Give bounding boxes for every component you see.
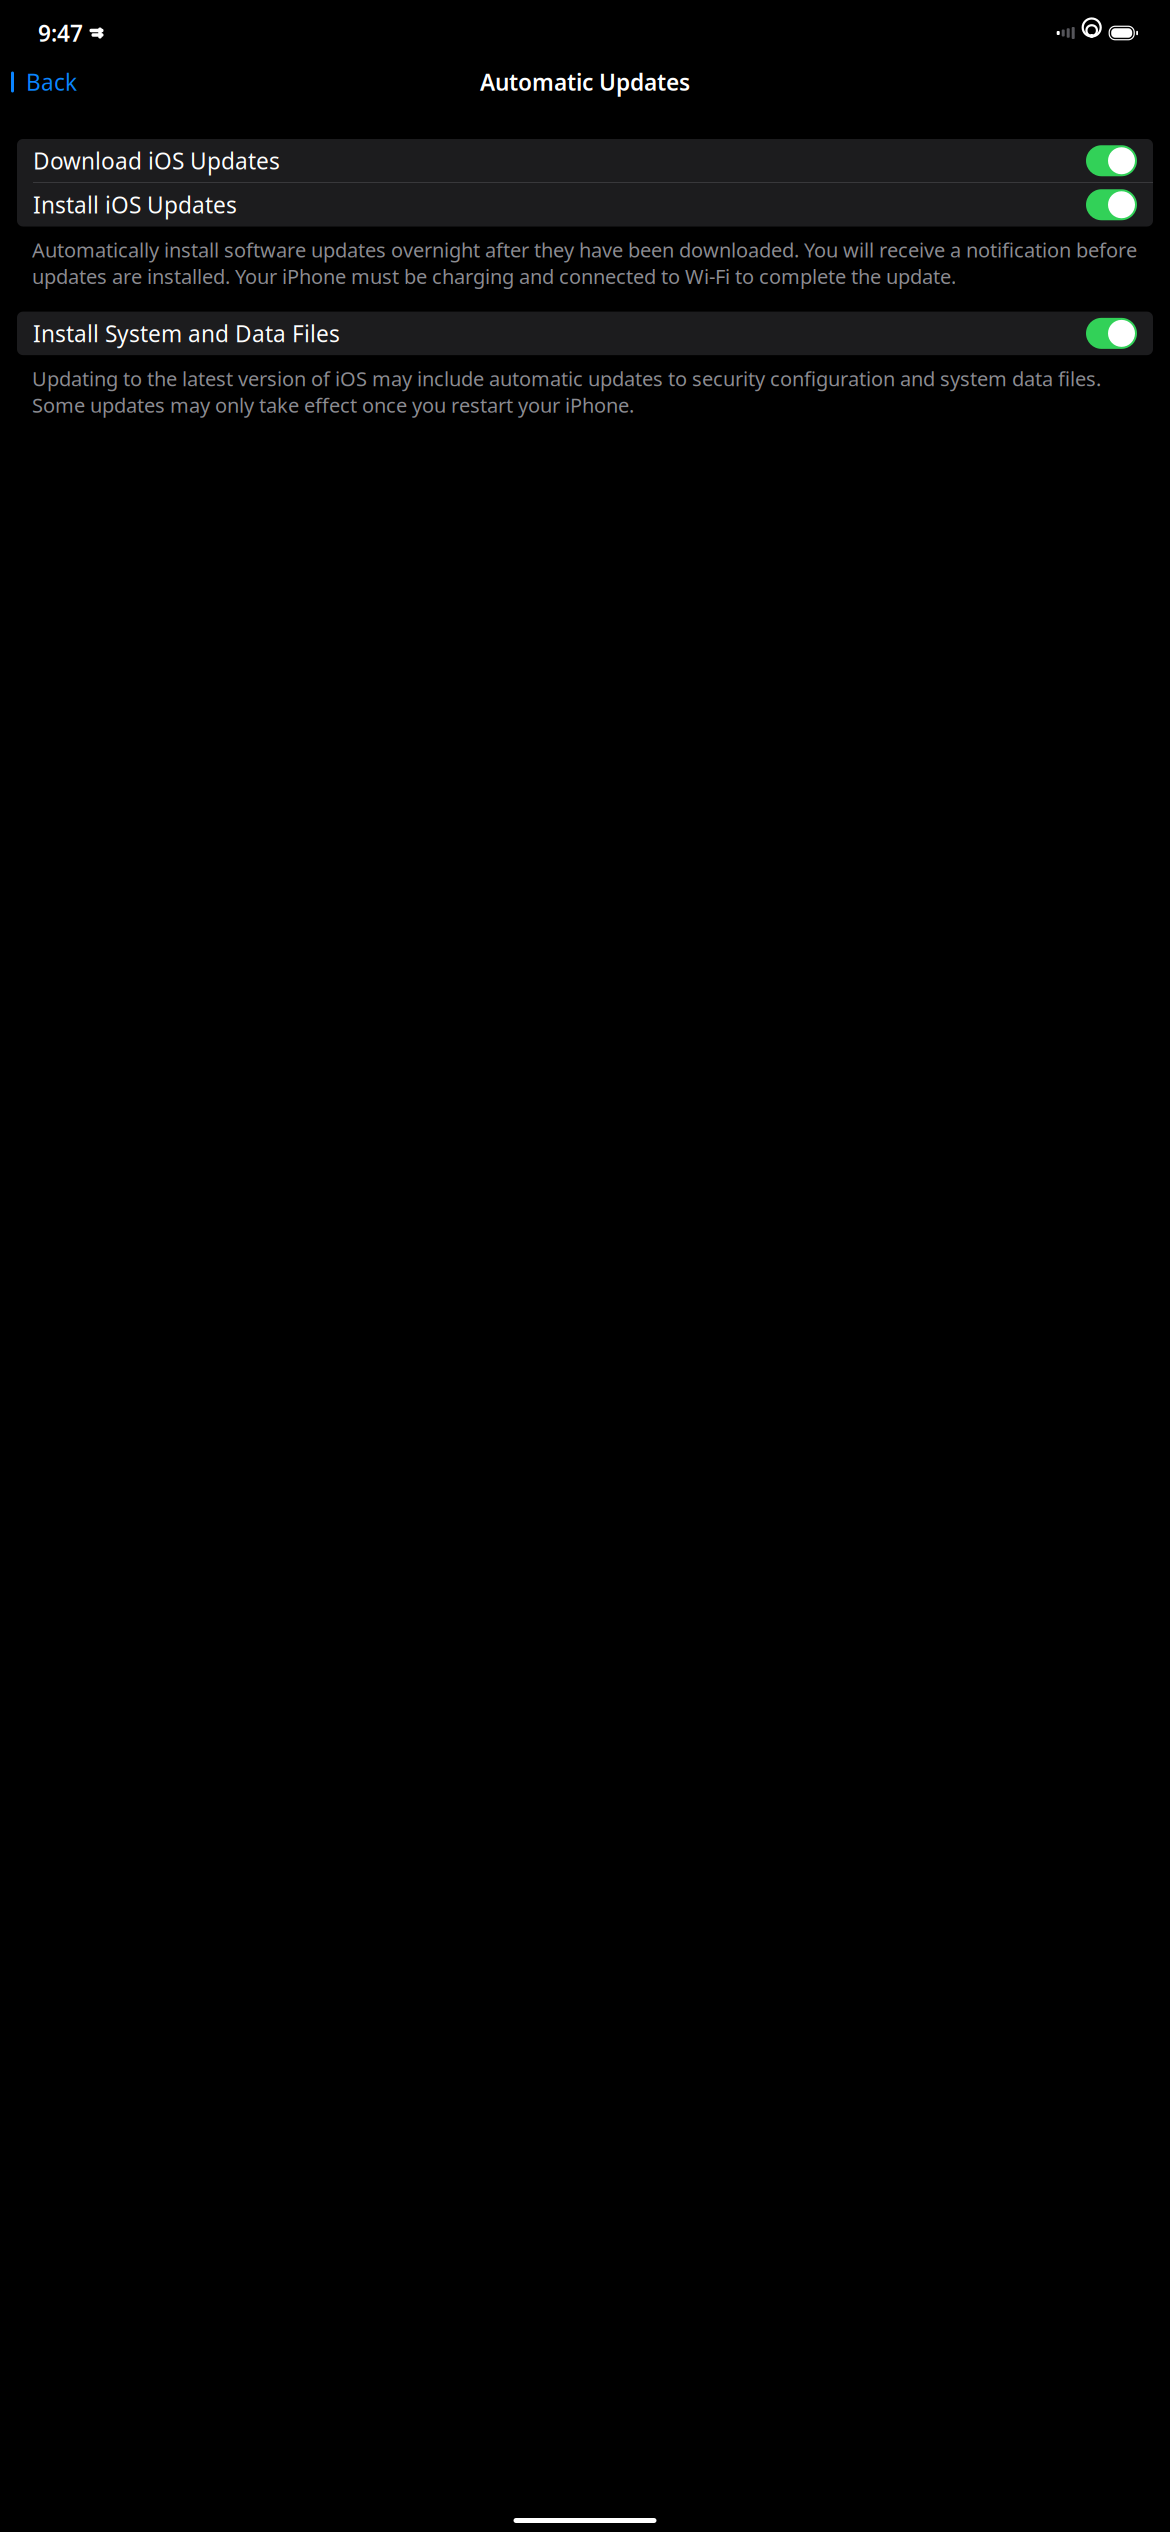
staticText: Automatic Updates — [480, 67, 690, 97]
button[interactable]: Back — [0, 59, 87, 105]
staticText: 9:47 — [38, 18, 83, 48]
button[interactable]: Install System and Data Files — [17, 312, 1153, 355]
staticText: Automatically install software updates o… — [32, 236, 1137, 290]
staticText: Install iOS Updates — [33, 190, 237, 220]
staticText: Updating to the latest version of iOS ma… — [32, 365, 1101, 418]
staticText: Install System and Data Files — [33, 318, 340, 348]
button[interactable]: Install iOS Updates — [17, 183, 1153, 226]
staticText: Download iOS Updates — [33, 146, 280, 176]
staticText: Back — [26, 67, 77, 97]
button[interactable]: Download iOS Updates — [17, 139, 1153, 182]
